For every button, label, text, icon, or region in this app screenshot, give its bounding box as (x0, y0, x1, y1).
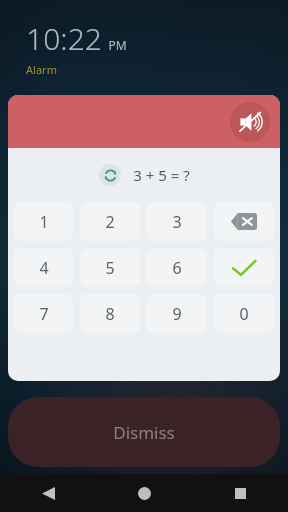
staticText: Alarm (26, 62, 57, 77)
button[interactable]: Mute alarm (230, 102, 270, 142)
button[interactable]: Home (96, 474, 192, 512)
button[interactable]: 2 (80, 202, 140, 241)
staticText: 6 (172, 257, 182, 279)
staticText: 9 (172, 303, 182, 325)
button[interactable]: 9 (147, 294, 207, 333)
staticText: 3 (172, 211, 182, 233)
staticText: PM (108, 37, 127, 53)
staticText: Dismiss (113, 421, 175, 444)
staticText: 1 (39, 211, 49, 233)
button[interactable]: 6 (147, 248, 207, 287)
button[interactable]: Recent apps (192, 474, 288, 512)
button[interactable]: 0 (214, 294, 274, 333)
button[interactable]: 4 (14, 248, 73, 287)
button[interactable]: Backspace (214, 202, 274, 241)
button[interactable]: Confirm answer (214, 248, 274, 287)
staticText: 3 + 5 = ? (133, 165, 190, 185)
button[interactable]: 3 (147, 202, 207, 241)
staticText: 8 (105, 303, 115, 325)
button[interactable]: 7 (14, 294, 73, 333)
button[interactable]: Dismiss (8, 397, 280, 467)
staticText: 10:22 (26, 18, 102, 59)
button[interactable]: 1 (14, 202, 73, 241)
button[interactable]: 5 (80, 248, 140, 287)
staticText: 5 (105, 257, 115, 279)
staticText: 2 (105, 211, 115, 233)
staticText: 7 (39, 303, 49, 325)
button[interactable]: Back (0, 474, 96, 512)
button[interactable]: 8 (80, 294, 140, 333)
staticText: 4 (39, 257, 49, 279)
staticText: 0 (239, 303, 249, 325)
button[interactable]: New problem (99, 164, 121, 186)
